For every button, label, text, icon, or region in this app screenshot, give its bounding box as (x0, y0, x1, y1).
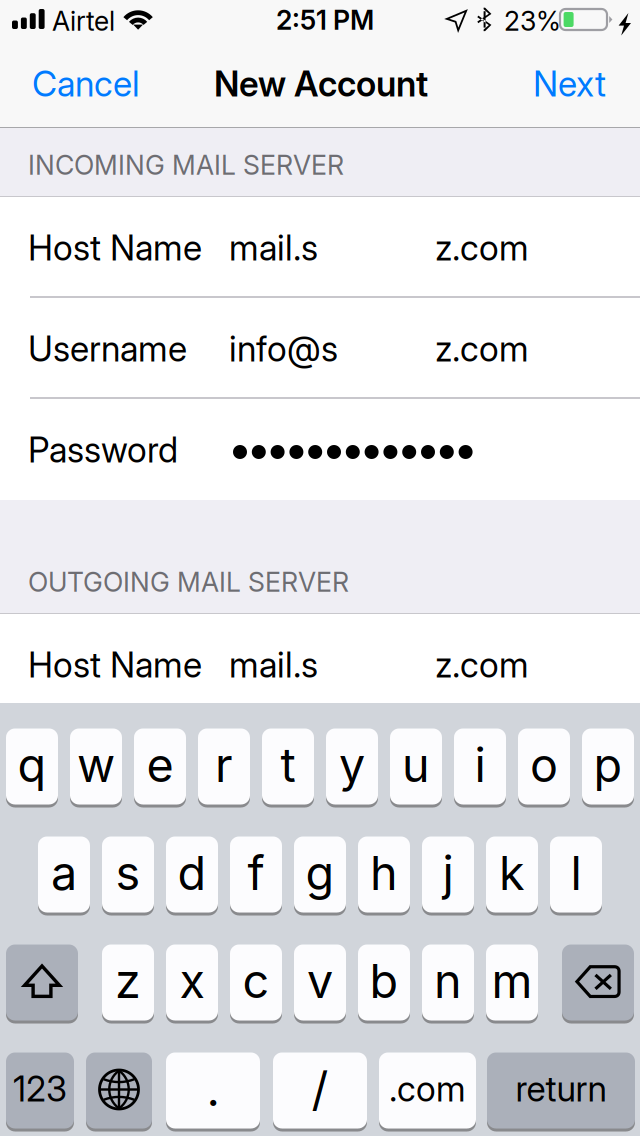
staticText: z.com (435, 328, 529, 370)
button[interactable]: return (487, 1051, 635, 1130)
button[interactable]: w (70, 727, 122, 806)
button[interactable]: b (358, 943, 410, 1022)
staticText: r (215, 737, 233, 793)
staticText: x (179, 953, 204, 1009)
staticText: h (370, 845, 398, 901)
staticText: c (242, 953, 269, 1009)
staticText: w (77, 737, 115, 793)
button[interactable]: d (166, 835, 218, 914)
button[interactable]: Next keyboard (86, 1051, 152, 1130)
staticText: Host Name (28, 227, 202, 269)
button[interactable]: t (262, 727, 314, 806)
button[interactable]: k (486, 835, 538, 914)
button[interactable]: r (198, 727, 250, 806)
button[interactable]: i (454, 727, 506, 806)
staticText: Next (533, 63, 606, 105)
staticText: .com (389, 1068, 466, 1110)
staticText: return (515, 1068, 606, 1110)
button[interactable]: z (102, 943, 154, 1022)
staticText: o (530, 737, 558, 793)
button[interactable]: Delete (562, 943, 634, 1022)
staticText: 2:51 PM (276, 4, 374, 36)
button[interactable]: Host Name (0, 614, 640, 715)
staticText: d (177, 845, 206, 901)
staticText: g (305, 845, 334, 901)
button[interactable]: u (390, 727, 442, 806)
button[interactable]: Shift (6, 943, 78, 1022)
staticText: z.com (435, 644, 529, 686)
staticText: . (206, 1061, 219, 1117)
staticText: mail.s (229, 644, 318, 686)
button[interactable]: n (422, 943, 474, 1022)
staticText: q (17, 737, 46, 793)
button[interactable]: q (6, 727, 58, 806)
button[interactable]: a (38, 835, 90, 914)
staticText: Password (28, 429, 178, 471)
staticText: Username (28, 328, 187, 370)
staticText: n (434, 953, 462, 1009)
staticText: / (311, 1061, 328, 1117)
button[interactable]: j (422, 835, 474, 914)
staticText: p (593, 737, 622, 793)
button[interactable]: p (582, 727, 634, 806)
staticText: m (491, 953, 532, 1009)
button[interactable]: Password (0, 399, 640, 500)
staticText: u (402, 737, 430, 793)
staticText: i (474, 737, 485, 793)
button[interactable]: / (273, 1051, 367, 1130)
staticText: INCOMING MAIL SERVER (28, 149, 344, 181)
staticText: k (499, 845, 525, 901)
button[interactable]: v (294, 943, 346, 1022)
button[interactable]: c (230, 943, 282, 1022)
button[interactable]: Host Name (0, 197, 640, 298)
button[interactable]: Username (0, 298, 640, 399)
staticText: t (280, 737, 295, 793)
button[interactable]: 123 (6, 1051, 74, 1130)
button[interactable]: Next (470, 48, 640, 127)
staticText: 23% (504, 5, 561, 37)
staticText: 123 (13, 1068, 67, 1110)
staticText: z.com (435, 227, 529, 269)
staticText: info@s (229, 328, 338, 370)
button[interactable]: o (518, 727, 570, 806)
button[interactable]: s (102, 835, 154, 914)
staticText: z (115, 953, 141, 1009)
staticText: b (369, 953, 398, 1009)
staticText: v (307, 953, 333, 1009)
button[interactable]: g (294, 835, 346, 914)
button[interactable]: x (166, 943, 218, 1022)
staticText: f (247, 845, 264, 901)
button[interactable]: m (486, 943, 538, 1022)
staticText: mail.s (229, 227, 318, 269)
button[interactable]: f (230, 835, 282, 914)
staticText: j (442, 845, 453, 901)
button[interactable]: . (166, 1051, 260, 1130)
staticText: OUTGOING MAIL SERVER (28, 566, 349, 598)
staticText: Cancel (32, 63, 140, 105)
button[interactable]: l (550, 835, 602, 914)
staticText: e (146, 737, 173, 793)
button[interactable]: Cancel (0, 48, 170, 127)
staticText: Airtel (52, 5, 115, 37)
staticText: Host Name (28, 644, 202, 686)
staticText: y (339, 737, 365, 793)
button[interactable]: y (326, 727, 378, 806)
staticText: l (570, 845, 581, 901)
staticText: New Account (214, 63, 428, 105)
staticText: s (115, 845, 140, 901)
button[interactable]: e (134, 727, 186, 806)
button[interactable]: .com (379, 1051, 476, 1130)
staticText: a (51, 845, 77, 901)
button[interactable]: h (358, 835, 410, 914)
